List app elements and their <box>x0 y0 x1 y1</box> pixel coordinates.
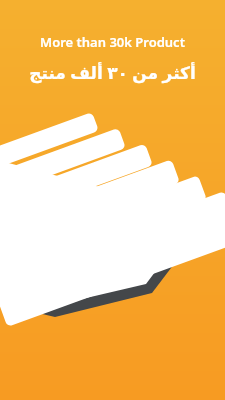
staticText: More than 30k Product <box>40 33 185 51</box>
staticText: أكثر من ٣٠ ألف منتج <box>29 61 196 84</box>
